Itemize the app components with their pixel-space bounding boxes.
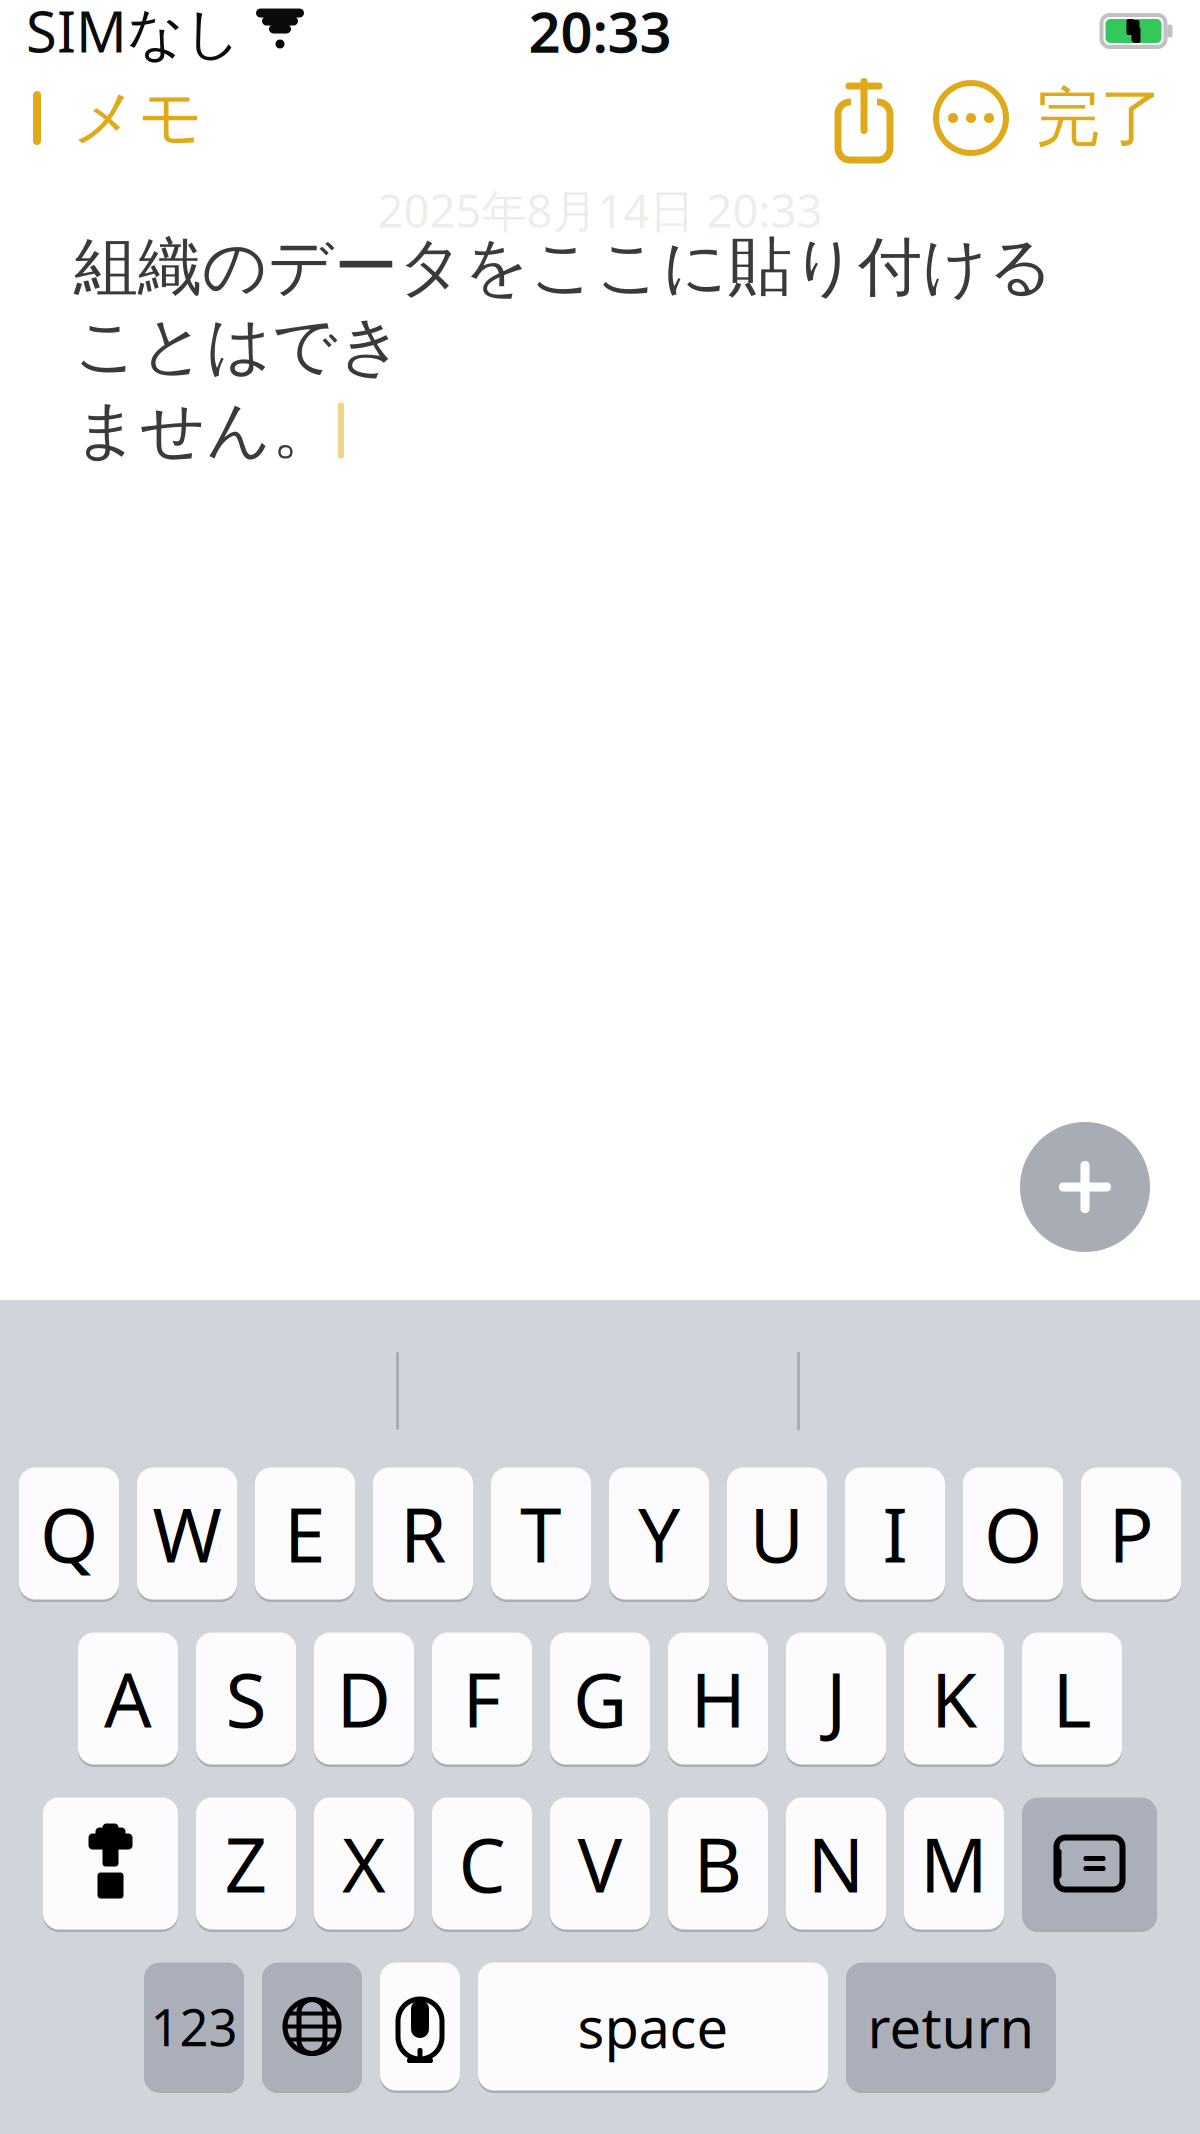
button[interactable]: B [668, 1795, 768, 1932]
button[interactable]: M [904, 1795, 1004, 1932]
staticText: C [458, 1814, 505, 1913]
button[interactable]: その他 [906, 81, 1036, 155]
button[interactable]: Z [196, 1795, 296, 1932]
staticText: J [826, 1649, 846, 1748]
staticText: P [1108, 1484, 1153, 1583]
staticText: R [400, 1484, 446, 1583]
button[interactable]: space [478, 1960, 828, 2093]
button[interactable]: O [963, 1465, 1063, 1602]
staticText: space [577, 1989, 728, 2064]
button[interactable]: W [137, 1465, 237, 1602]
button[interactable]: R [373, 1465, 473, 1602]
button[interactable]: S [196, 1630, 296, 1767]
staticText: O [984, 1484, 1042, 1583]
staticText: T [520, 1484, 562, 1583]
staticText: S [225, 1649, 266, 1748]
button[interactable]: N [786, 1795, 886, 1932]
button[interactable]: A [78, 1630, 178, 1767]
button[interactable]: 共有 [822, 70, 906, 166]
staticText: G [573, 1649, 627, 1748]
button[interactable]: X [314, 1795, 414, 1932]
button[interactable]: F [432, 1630, 532, 1767]
button[interactable]: C [432, 1795, 532, 1932]
button[interactable]: メモ [0, 69, 204, 167]
button[interactable]: E [255, 1465, 355, 1602]
button[interactable]: 次のキーボード [262, 1960, 362, 2093]
staticText: X [342, 1814, 386, 1913]
staticText: return [867, 1989, 1034, 2064]
staticText: D [336, 1649, 391, 1748]
staticText: Q [40, 1484, 98, 1583]
staticText: I [882, 1484, 907, 1583]
button[interactable]: I [845, 1465, 945, 1602]
staticText: 20:33 [528, 0, 671, 68]
staticText: SIMなし [26, 0, 241, 68]
staticText: N [807, 1814, 864, 1913]
button[interactable]: 追加 [1010, 1112, 1160, 1262]
button[interactable]: P [1081, 1465, 1181, 1602]
staticText: E [284, 1484, 326, 1583]
button[interactable]: 123 [144, 1960, 244, 2093]
staticText: Z [224, 1814, 267, 1913]
button[interactable]: U [727, 1465, 827, 1602]
button[interactable]: G [550, 1630, 650, 1767]
staticText: メモ [72, 79, 204, 157]
staticText: U [749, 1484, 804, 1583]
staticText: 完了 [1036, 79, 1164, 157]
button[interactable]: D [314, 1630, 414, 1767]
staticText: V [577, 1814, 622, 1913]
staticText: B [693, 1814, 742, 1913]
staticText: Y [638, 1484, 680, 1583]
staticText: 組織のデータをここに貼り付けることはでき [74, 228, 1054, 385]
staticText: F [462, 1649, 501, 1748]
button[interactable]: Q [19, 1465, 119, 1602]
button[interactable]: L [1022, 1630, 1122, 1767]
staticText: W [152, 1484, 221, 1583]
button[interactable]: T [491, 1465, 591, 1602]
button[interactable]: J [786, 1630, 886, 1767]
button[interactable]: 削除 [1022, 1795, 1157, 1932]
staticText: ません。 [74, 391, 336, 470]
staticText: 2025年8月14日 20:33 [377, 180, 822, 240]
staticText: 123 [150, 1993, 237, 2060]
button[interactable]: return [846, 1960, 1056, 2093]
button[interactable]: 音声入力 [380, 1960, 460, 2093]
staticText: A [104, 1649, 152, 1748]
button[interactable]: H [668, 1630, 768, 1767]
button[interactable]: シフト [43, 1795, 178, 1932]
staticText: M [920, 1814, 988, 1913]
button[interactable]: V [550, 1795, 650, 1932]
staticText: K [931, 1649, 977, 1748]
staticText: H [690, 1649, 745, 1748]
button[interactable]: Y [609, 1465, 709, 1602]
button[interactable]: K [904, 1630, 1004, 1767]
staticText: L [1052, 1649, 1091, 1748]
button[interactable]: 完了 [1036, 69, 1200, 167]
